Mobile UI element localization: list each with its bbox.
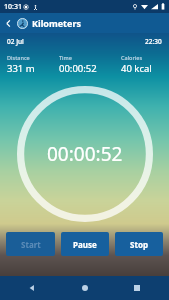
button[interactable]: Pause [61, 232, 109, 256]
button[interactable]: Recent apps [117, 276, 157, 300]
button[interactable]: Back [0, 15, 17, 32]
staticText: Pause [73, 239, 97, 250]
staticText: Time [59, 54, 72, 61]
staticText: Kilometers [32, 17, 81, 29]
button[interactable]: Stop [115, 232, 163, 256]
staticText: 22:30 [145, 37, 162, 46]
staticText: Start [21, 239, 41, 250]
staticText: Distance [7, 54, 30, 61]
staticText: Calories [121, 54, 143, 61]
button[interactable]: Back [12, 276, 52, 300]
button[interactable]: Home [65, 276, 105, 300]
staticText: Stop [130, 239, 148, 250]
staticText: 02 Jul [7, 37, 24, 46]
staticText: 40 kcal [121, 62, 152, 75]
staticText: 331 m [7, 62, 35, 75]
button[interactable]: Start [6, 232, 55, 256]
staticText: 00:00:52 [59, 62, 97, 75]
staticText: 00:00:52 [47, 141, 123, 167]
staticText: 10:31 [4, 2, 22, 12]
